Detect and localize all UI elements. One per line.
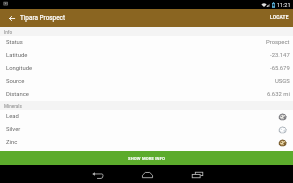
staticText: Minerals — [4, 104, 22, 109]
staticText: Tipara Prospect — [20, 14, 66, 22]
button[interactable]: Longitude — [0, 62, 293, 75]
button[interactable]: Recent apps — [172, 165, 222, 183]
button[interactable]: Latitude — [0, 49, 293, 62]
staticText: Zinc — [6, 139, 18, 146]
button[interactable]: Distance — [0, 88, 293, 101]
button[interactable]: LOCATE — [265, 11, 293, 25]
staticText: LOCATE — [270, 15, 289, 21]
staticText: Prospect — [266, 39, 290, 46]
staticText: 6.632 mi — [267, 91, 290, 98]
staticText: 11:21 — [277, 2, 291, 8]
staticText: Longitude — [6, 65, 33, 72]
staticText: Info — [4, 30, 13, 35]
staticText: Source — [6, 78, 25, 85]
button[interactable]: Zinc — [0, 136, 293, 149]
button[interactable]: Back — [0, 9, 23, 27]
button[interactable]: Lead — [0, 110, 293, 123]
staticText: Latitude — [6, 52, 28, 59]
staticText: Distance — [6, 91, 29, 98]
button[interactable]: Silver — [0, 123, 293, 136]
button[interactable]: Status — [0, 36, 293, 49]
staticText: Silver — [6, 126, 21, 133]
button[interactable]: Source — [0, 75, 293, 88]
staticText: -23.147 — [270, 52, 290, 59]
staticText: SHOW MORE INFO — [128, 156, 166, 161]
button[interactable]: Back — [72, 165, 122, 183]
button[interactable]: Home — [122, 165, 172, 183]
staticText: -65.679 — [270, 65, 290, 72]
staticText: Status — [6, 39, 23, 46]
staticText: Lead — [6, 113, 19, 120]
button[interactable]: SHOW MORE INFO — [0, 151, 293, 165]
staticText: USGS — [275, 78, 290, 85]
